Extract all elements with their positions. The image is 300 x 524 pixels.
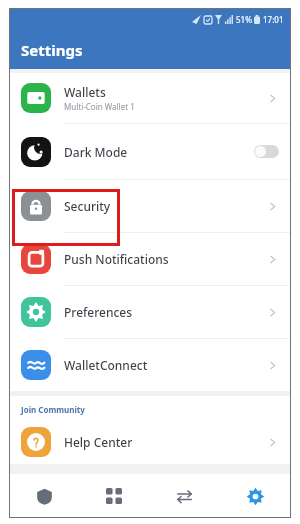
button[interactable]: Apps	[79, 474, 149, 518]
button[interactable]: Wallets	[9, 73, 291, 123]
staticText: WalletConnect	[64, 357, 148, 373]
button[interactable]: Security	[9, 474, 79, 518]
button[interactable]: Push Notifications	[9, 233, 291, 285]
button[interactable]: Settings	[220, 474, 291, 518]
staticText: 51%	[236, 14, 252, 25]
button[interactable]: Dark Mode	[9, 124, 291, 179]
staticText: Help Center	[64, 434, 133, 450]
button[interactable]: WalletConnect	[9, 339, 291, 391]
staticText: Security	[64, 198, 111, 214]
button[interactable]: Swap	[149, 474, 220, 518]
staticText: Settings	[21, 40, 83, 60]
button[interactable]: Security	[9, 180, 291, 232]
button[interactable]: Preferences	[9, 286, 291, 338]
button[interactable]: Dark Mode toggle	[254, 145, 279, 158]
staticText: Preferences	[64, 304, 133, 320]
button[interactable]: Help Center	[9, 420, 291, 464]
staticText: Dark Mode	[64, 144, 128, 160]
staticText: Push Notifications	[64, 251, 169, 267]
staticText: Multi-Coin Wallet 1	[64, 101, 135, 112]
staticText: Join Community	[21, 404, 85, 415]
staticText: 17:01	[263, 14, 284, 25]
staticText: Wallets	[64, 84, 106, 100]
